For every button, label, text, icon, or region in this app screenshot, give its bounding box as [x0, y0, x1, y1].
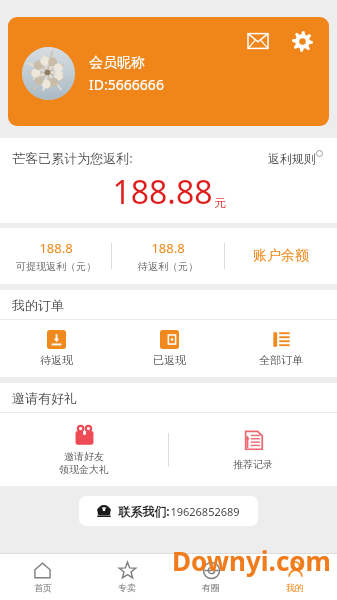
button[interactable]: 188.8 — [0, 228, 111, 284]
staticText: 推荐记录 — [233, 458, 273, 471]
button[interactable]: 账户余额 — [225, 228, 337, 284]
staticText: 待返利（元） — [138, 260, 198, 273]
staticText: 可提现返利（元） — [16, 260, 96, 273]
staticText: 19626852689 — [170, 504, 240, 519]
staticText: 首页 — [34, 582, 52, 593]
staticText: 邀请好友 — [64, 450, 104, 463]
button[interactable]: Messages — [243, 26, 273, 56]
button[interactable]: 已返现 — [113, 320, 225, 377]
staticText: 188.88 — [112, 170, 213, 214]
staticText: Downyi.com — [172, 543, 331, 578]
staticText: ID:5666666 — [89, 75, 164, 94]
staticText: 会员昵称 — [89, 54, 145, 72]
staticText: 邀请有好礼 — [12, 390, 77, 406]
button[interactable]: 全部订单 — [225, 320, 337, 377]
button[interactable]: 邀请好友 — [0, 413, 168, 486]
button[interactable]: 我的 — [253, 553, 337, 600]
staticText: 待返现 — [40, 353, 73, 367]
staticText: 返利规则 — [268, 151, 316, 166]
staticText: 专卖 — [118, 582, 136, 593]
staticText: 元 — [214, 195, 226, 210]
staticText: 全部订单 — [259, 353, 303, 367]
staticText: 联系我们: — [118, 503, 170, 519]
staticText: 有圈 — [202, 582, 220, 593]
staticText: 账户余额 — [253, 247, 309, 265]
staticText: 芒客已累计为您返利: — [12, 149, 133, 167]
staticText: 我的订单 — [12, 297, 64, 313]
button[interactable]: 首页 — [0, 553, 85, 600]
staticText: 领现金大礼 — [59, 463, 109, 476]
staticText: 188.8 — [151, 239, 185, 257]
button[interactable]: 188.8 — [112, 228, 224, 284]
button[interactable]: 专卖 — [85, 553, 169, 600]
staticText: 188.8 — [39, 239, 73, 257]
button[interactable]: Settings — [287, 26, 317, 56]
button[interactable]: Messages — [8, 17, 329, 126]
staticText: 我的 — [286, 582, 304, 593]
button[interactable]: 有圈 — [169, 553, 253, 600]
button[interactable]: 联系我们: — [79, 496, 258, 526]
staticText: 已返现 — [153, 353, 186, 367]
button[interactable]: 返利规则 — [266, 149, 325, 168]
button[interactable]: 待返现 — [0, 320, 113, 377]
button[interactable]: 推荐记录 — [169, 413, 337, 486]
